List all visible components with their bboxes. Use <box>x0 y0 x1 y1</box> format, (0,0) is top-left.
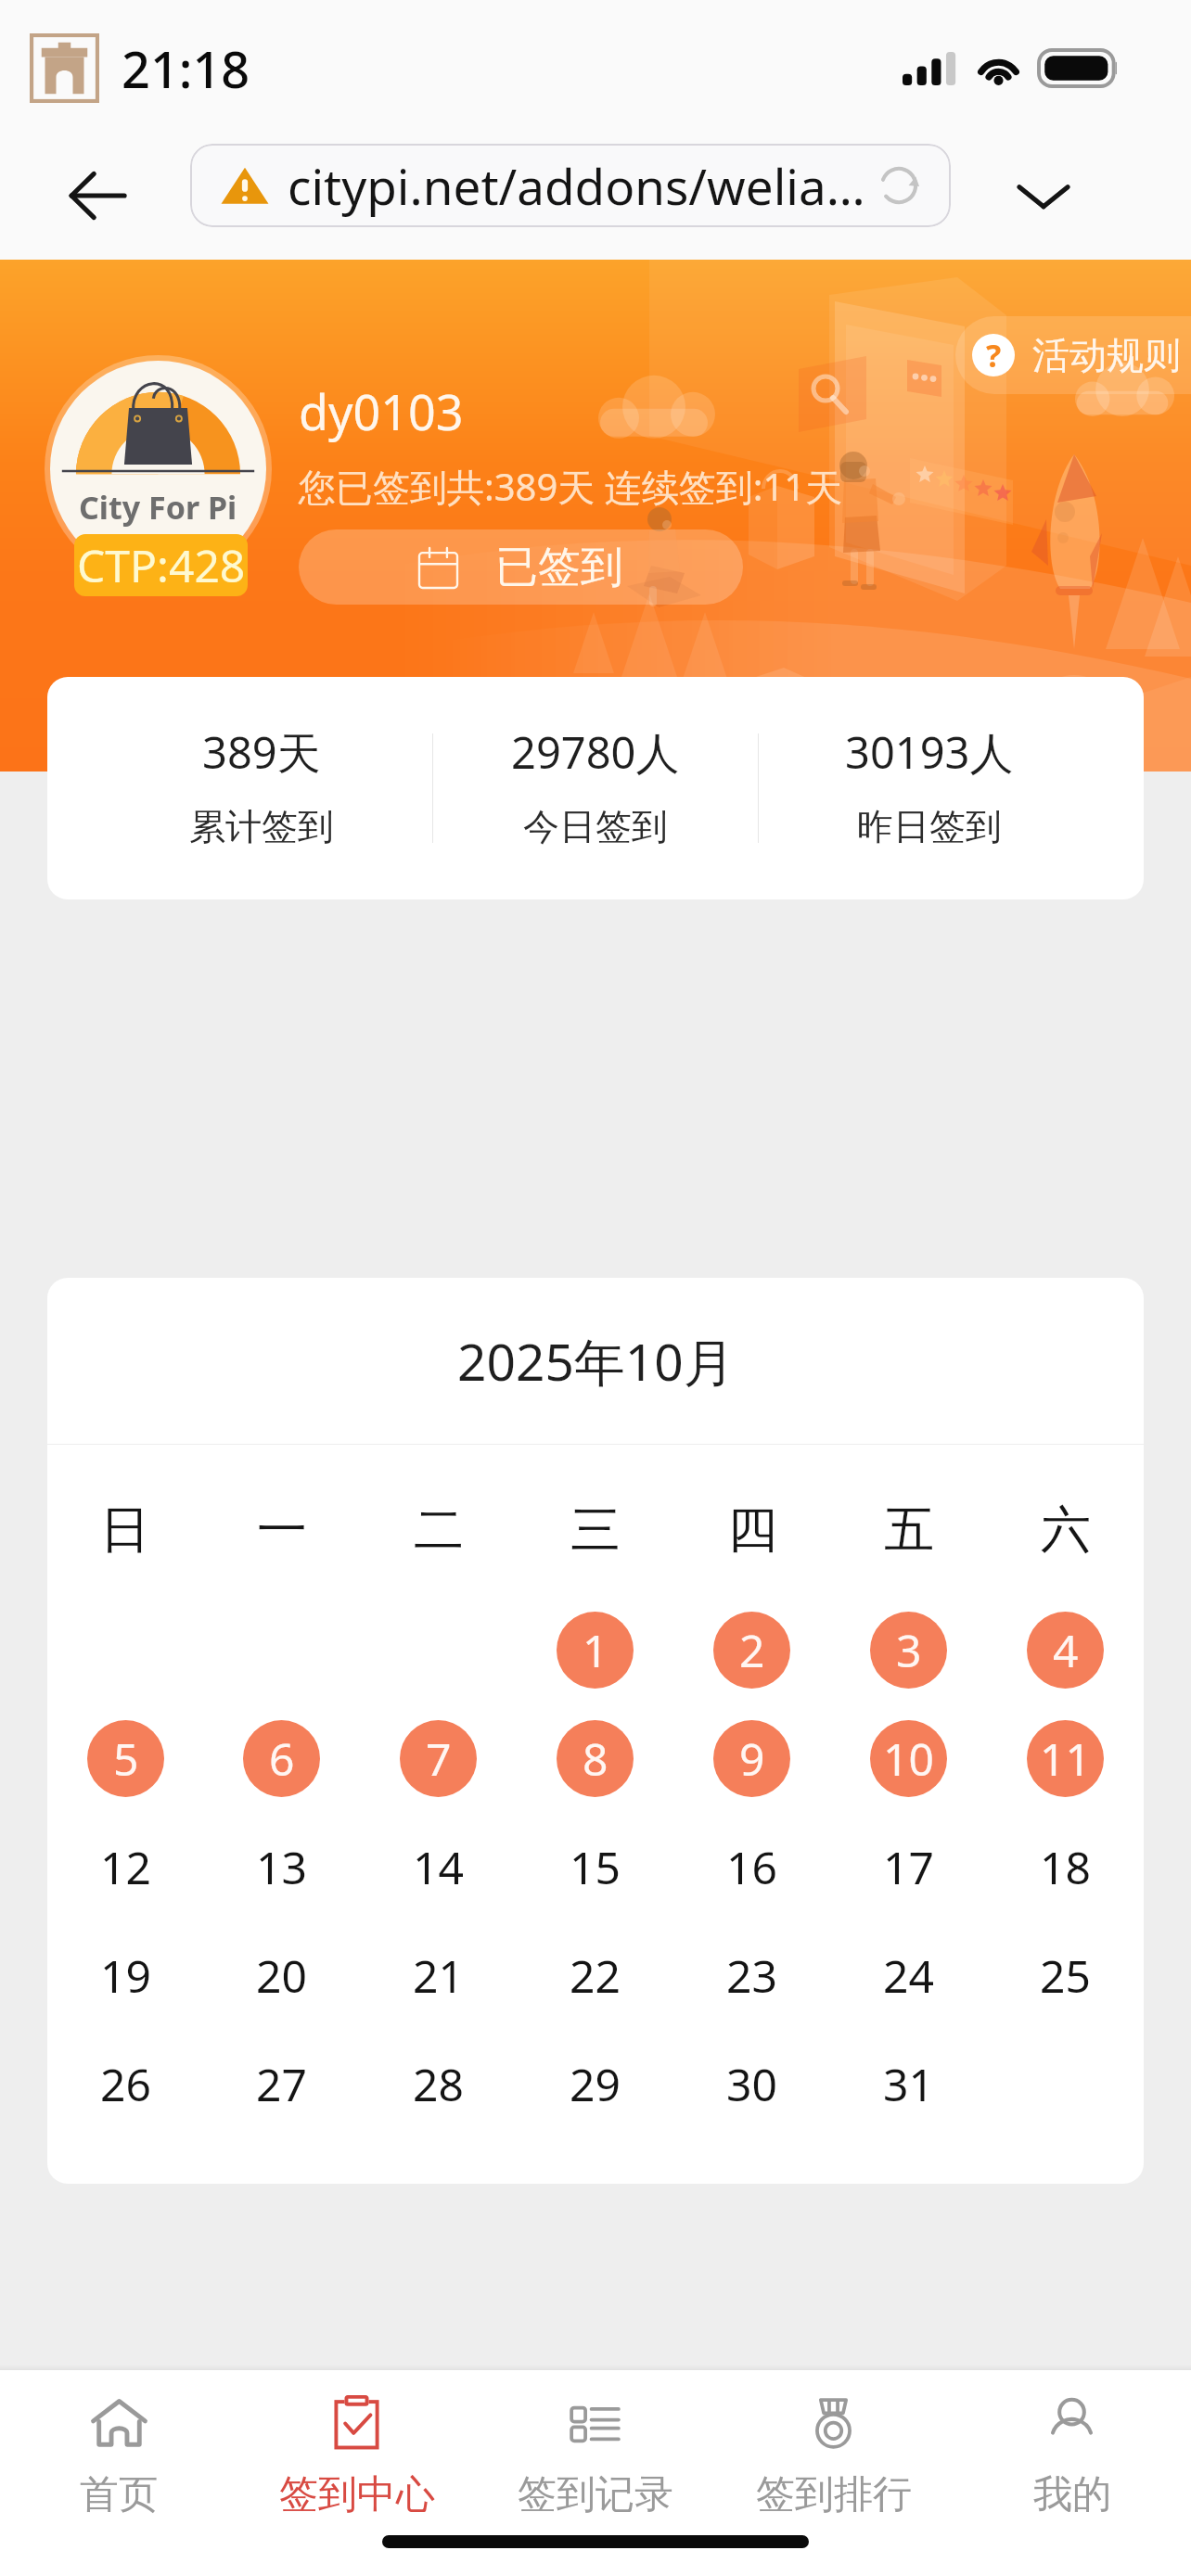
staticText: 活动规则 <box>1032 332 1181 378</box>
staticText: 一 <box>257 1498 307 1562</box>
button[interactable]: 19 <box>87 1937 164 2014</box>
button[interactable]: 18 <box>1027 1829 1104 1906</box>
button[interactable]: 11 <box>1027 1720 1104 1797</box>
staticText: 我的 <box>1033 2470 1111 2519</box>
button[interactable]: 27 <box>243 2046 320 2123</box>
button[interactable]: 3 <box>870 1612 947 1689</box>
staticText: 15 <box>570 1837 621 1897</box>
staticText: 五 <box>884 1498 934 1562</box>
staticText: 26 <box>100 2054 151 2114</box>
button[interactable]: 我的 <box>953 2370 1191 2524</box>
staticText: 四 <box>727 1498 777 1562</box>
button[interactable]: 31 <box>870 2046 947 2123</box>
button[interactable]: 8 <box>557 1720 634 1797</box>
staticText: 3 <box>896 1620 922 1680</box>
button[interactable]: 28 <box>400 2046 477 2123</box>
staticText: 21:18 <box>122 34 250 103</box>
button[interactable]: 30 <box>713 2046 790 2123</box>
staticText: citypi.net/addons/welia… <box>288 152 865 219</box>
button[interactable]: citypi.net/addons/welia… <box>190 144 951 227</box>
staticText: 31 <box>883 2054 934 2114</box>
button[interactable]: 签到记录 <box>476 2370 714 2524</box>
staticText: 22 <box>570 1945 621 2006</box>
button[interactable]: 16 <box>713 1829 790 1906</box>
staticText: 11 <box>1040 1728 1091 1789</box>
button[interactable]: 5 <box>87 1720 164 1797</box>
staticText: 20 <box>256 1945 307 2006</box>
staticText: 签到中心 <box>279 2470 435 2519</box>
staticText: 12 <box>100 1837 151 1897</box>
staticText: 13 <box>256 1837 307 1897</box>
staticText: 18 <box>1040 1837 1091 1897</box>
staticText: 9 <box>739 1728 765 1789</box>
staticText: 25 <box>1040 1945 1091 2006</box>
button[interactable]: 首页 <box>0 2370 237 2524</box>
staticText: 三 <box>570 1498 621 1562</box>
staticText: 签到排行 <box>756 2470 912 2519</box>
button[interactable]: 13 <box>243 1829 320 1906</box>
button[interactable]: 9 <box>713 1720 790 1797</box>
staticText: 签到记录 <box>518 2470 673 2519</box>
button[interactable]: 17 <box>870 1829 947 1906</box>
staticText: 24 <box>883 1945 934 2006</box>
staticText: 六 <box>1041 1498 1091 1562</box>
button[interactable]: 14 <box>400 1829 477 1906</box>
staticText: 17 <box>883 1837 934 1897</box>
staticText: 2 <box>739 1620 765 1680</box>
button[interactable]: 26 <box>87 2046 164 2123</box>
staticText: 二 <box>414 1498 464 1562</box>
button[interactable]: 2 <box>713 1612 790 1689</box>
button[interactable]: 12 <box>87 1829 164 1906</box>
staticText: 30193人 <box>845 722 1014 782</box>
staticText: 7 <box>426 1728 452 1789</box>
button[interactable]: Expand <box>969 131 1118 260</box>
button[interactable]: 21 <box>400 1937 477 2014</box>
button[interactable]: 1 <box>557 1612 634 1689</box>
staticText: 23 <box>726 1945 777 2006</box>
button[interactable]: 10 <box>870 1720 947 1797</box>
staticText: 已签到 <box>495 541 623 594</box>
button[interactable]: 23 <box>713 1937 790 2014</box>
staticText: 28 <box>413 2054 464 2114</box>
staticText: 昨日签到 <box>857 804 1002 849</box>
staticText: 389天 <box>202 722 321 782</box>
staticText: 30 <box>726 2054 777 2114</box>
staticText: CTP:428 <box>77 535 246 595</box>
staticText: 6 <box>269 1728 295 1789</box>
staticText: ? <box>986 334 1002 376</box>
button[interactable]: 已签到 <box>299 529 743 605</box>
button[interactable]: 7 <box>400 1720 477 1797</box>
staticText: 27 <box>256 2054 307 2114</box>
button[interactable]: 15 <box>557 1829 634 1906</box>
button[interactable]: 签到排行 <box>714 2370 953 2524</box>
button[interactable]: 29 <box>557 2046 634 2123</box>
button[interactable]: 24 <box>870 1937 947 2014</box>
staticText: 19 <box>100 1945 151 2006</box>
button[interactable]: 25 <box>1027 1937 1104 2014</box>
staticText: 8 <box>583 1728 608 1789</box>
staticText: 14 <box>413 1837 464 1897</box>
staticText: 日 <box>100 1498 150 1562</box>
button[interactable]: 22 <box>557 1937 634 2014</box>
staticText: 累计签到 <box>189 804 334 849</box>
staticText: 首页 <box>80 2470 158 2519</box>
staticText: 16 <box>726 1837 777 1897</box>
button[interactable]: Back <box>19 131 176 260</box>
staticText: City For Pi <box>79 486 237 529</box>
button[interactable]: ? <box>955 316 1191 394</box>
staticText: 2025年10月 <box>457 1326 735 1396</box>
staticText: 10 <box>883 1728 934 1789</box>
staticText: 4 <box>1053 1620 1079 1680</box>
button[interactable]: 签到中心 <box>237 2370 476 2524</box>
staticText: 21 <box>413 1945 464 2006</box>
button[interactable]: 4 <box>1027 1612 1104 1689</box>
button[interactable]: 20 <box>243 1937 320 2014</box>
staticText: dy0103 <box>299 378 464 444</box>
staticText: 29780人 <box>511 722 680 782</box>
button[interactable]: 6 <box>243 1720 320 1797</box>
staticText: 29 <box>570 2054 621 2114</box>
staticText: 5 <box>113 1728 139 1789</box>
staticText: 您已签到共:389天 连续签到:11天 <box>299 461 843 512</box>
staticText: 今日签到 <box>523 804 668 849</box>
staticText: 1 <box>583 1620 608 1680</box>
